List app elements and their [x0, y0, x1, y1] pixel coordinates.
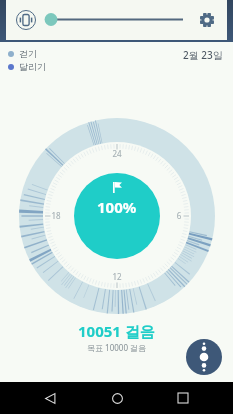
staticText: 달리기	[19, 61, 46, 72]
staticText: 6	[167, 210, 191, 221]
button[interactable]: Vibration mode	[11, 5, 40, 34]
button[interactable]: Home	[101, 382, 133, 414]
staticText: 걷기	[19, 48, 37, 59]
button[interactable]: More options	[186, 339, 222, 375]
button[interactable]: Back	[34, 382, 66, 414]
staticText: 10051 걸음	[78, 321, 155, 341]
staticText: 18	[44, 210, 68, 221]
staticText: 2월 23일	[183, 48, 223, 62]
button[interactable]: Brightness slider	[41, 6, 193, 33]
staticText: 100%	[97, 197, 137, 217]
button[interactable]: Settings	[193, 6, 220, 33]
staticText: 24	[105, 148, 129, 159]
staticText: 목표 10000 걸음	[87, 342, 147, 353]
button[interactable]: 달리기	[8, 61, 46, 72]
staticText: 12	[105, 271, 129, 282]
button[interactable]: Recents	[167, 382, 199, 414]
button[interactable]: 걷기	[8, 48, 37, 59]
